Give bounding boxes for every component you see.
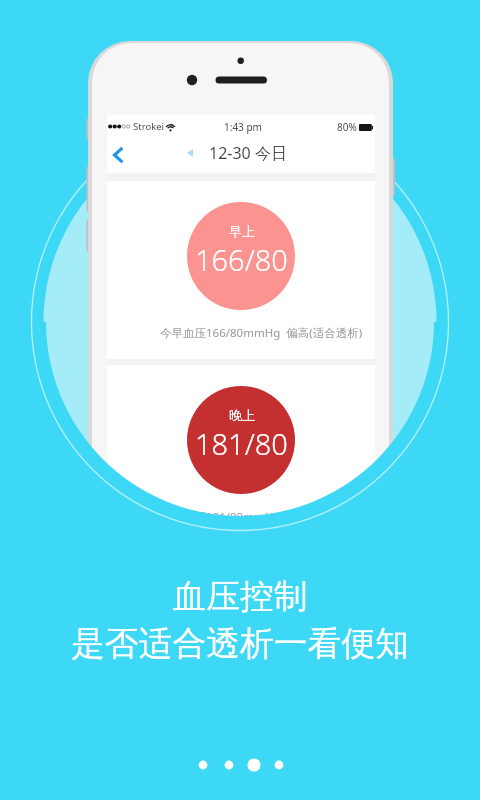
staticText: 早上: [229, 223, 255, 239]
staticText: 是否适合透析一看便知: [71, 622, 409, 665]
staticText: 1:43 pm: [224, 120, 262, 134]
staticText: 181/80: [195, 424, 288, 463]
staticText: 血压控制: [172, 575, 308, 618]
button[interactable]: [103, 140, 133, 170]
staticText: 今早血压166/80mmHg 偏高(适合透析): [160, 325, 363, 341]
staticText: 今晚血压181/80mmHg 偏高(适合透析): [160, 509, 363, 525]
staticText: 166/80: [195, 240, 288, 279]
button[interactable]: 晚上: [107, 365, 375, 543]
staticText: 80%: [337, 120, 357, 134]
staticText: Strokei: [133, 120, 165, 133]
staticText: 晚上: [229, 407, 255, 423]
staticText: 12-30 今日: [209, 142, 287, 164]
button[interactable]: 早上: [107, 181, 375, 359]
